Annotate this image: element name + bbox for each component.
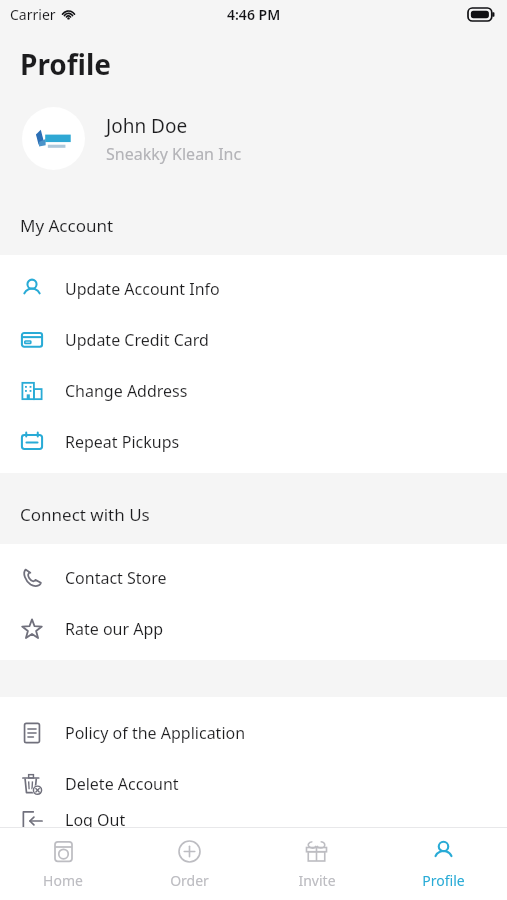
staticText: Update Credit Card: [65, 329, 209, 351]
staticText: Delete Account: [65, 773, 179, 795]
button[interactable]: Repeat Pickups: [0, 416, 507, 467]
button[interactable]: Change Address: [0, 365, 507, 416]
staticText: Change Address: [65, 380, 188, 402]
staticText: Update Account Info: [65, 278, 220, 300]
staticText: Profile: [20, 45, 112, 83]
button[interactable]: Log Out: [0, 809, 507, 827]
button[interactable]: Order: [126, 828, 253, 900]
button[interactable]: Update Account Info: [0, 263, 507, 314]
button[interactable]: Home: [0, 828, 126, 900]
staticText: Invite: [298, 871, 336, 890]
staticText: Order: [170, 871, 209, 890]
staticText: Profile: [422, 871, 465, 890]
button[interactable]: Invite: [253, 828, 380, 900]
staticText: Policy of the Application: [65, 722, 246, 744]
staticText: Home: [43, 871, 83, 890]
staticText: My Account: [20, 214, 507, 237]
staticText: Carrier: [10, 5, 56, 24]
button[interactable]: Profile: [380, 828, 507, 900]
button[interactable]: Policy of the Application: [0, 707, 507, 758]
staticText: Rate our App: [65, 618, 164, 640]
staticText: Connect with Us: [20, 503, 507, 526]
button[interactable]: Update Credit Card: [0, 314, 507, 365]
other: Company logo: [32, 117, 76, 161]
button[interactable]: Contact Store: [0, 552, 507, 603]
staticText: Sneakky Klean Inc: [106, 143, 242, 165]
button[interactable]: Company logo: [0, 103, 507, 174]
button[interactable]: Rate our App: [0, 603, 507, 654]
staticText: John Doe: [106, 113, 188, 139]
staticText: 4:46 PM: [227, 5, 281, 24]
button[interactable]: Delete Account: [0, 758, 507, 809]
staticText: Contact Store: [65, 567, 167, 589]
staticText: Repeat Pickups: [65, 431, 180, 453]
staticText: Log Out: [65, 809, 126, 827]
